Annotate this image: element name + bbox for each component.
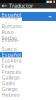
staticText: Serbio bbox=[1, 34, 16, 41]
staticText: Gallego bbox=[1, 74, 19, 81]
staticText: Euskera bbox=[1, 57, 21, 64]
staticText: Galés bbox=[1, 80, 15, 87]
staticText: Hebreo bbox=[1, 91, 19, 98]
staticText: Finés bbox=[1, 63, 14, 70]
staticText: Sueco bbox=[1, 45, 16, 53]
staticText: Rumano bbox=[1, 23, 21, 30]
staticText: Español bbox=[1, 11, 20, 18]
staticText: ⌁ bbox=[48, 13, 52, 20]
staticText: ← bbox=[1, 2, 7, 10]
staticText: Español bbox=[1, 51, 20, 58]
staticText: Portugués bbox=[1, 13, 19, 28]
staticText: Ruso bbox=[1, 28, 13, 35]
staticText: Traductor bbox=[9, 2, 33, 9]
staticText: Francés bbox=[1, 68, 21, 75]
staticText: Griego bbox=[1, 85, 17, 92]
staticText: Esloveno bbox=[1, 36, 19, 50]
staticText: ◼◼ ▮ bbox=[46, 0, 55, 4]
